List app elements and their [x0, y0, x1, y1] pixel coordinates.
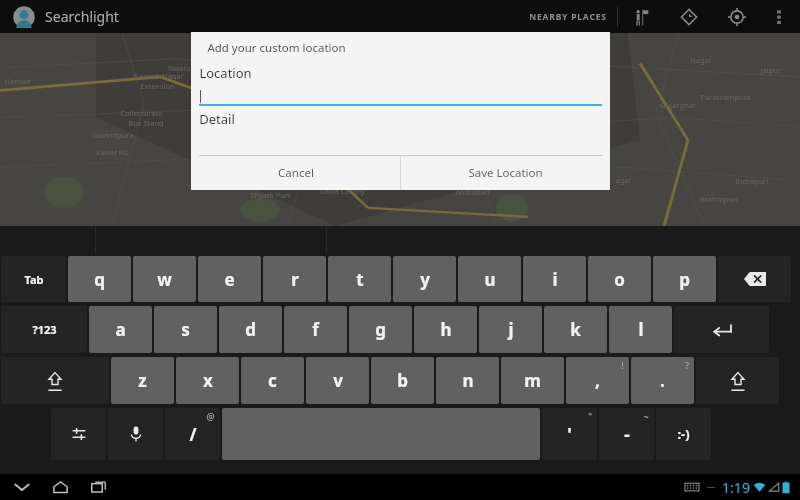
button[interactable]: Home [48, 475, 72, 499]
button[interactable]: t [328, 256, 391, 302]
staticText: Collectorate [120, 108, 163, 118]
staticText: ? [685, 359, 689, 371]
staticText: Add your custom location [207, 40, 346, 56]
button[interactable]: Save Location [401, 156, 610, 190]
staticText: o [614, 268, 625, 291]
staticText: g [375, 318, 386, 341]
button[interactable]: b [371, 357, 434, 404]
button[interactable]: l [609, 306, 672, 353]
button[interactable]: o [588, 256, 651, 302]
staticText: t [356, 268, 364, 291]
staticText: / [189, 423, 197, 446]
staticText: . [660, 369, 665, 392]
button[interactable]: enter [674, 306, 769, 353]
button[interactable]: g [349, 306, 412, 353]
staticText: - [624, 423, 630, 446]
staticText: j [508, 318, 514, 341]
button[interactable]: - [599, 408, 654, 460]
button[interactable]: ?123 [1, 306, 87, 353]
button[interactable]: x [176, 357, 239, 404]
button[interactable]: More options [766, 4, 792, 30]
button[interactable]: y [393, 256, 456, 302]
button[interactable]: shift [1, 357, 109, 404]
button[interactable]: Recent apps [86, 475, 110, 499]
button[interactable]: p [653, 256, 716, 302]
button[interactable]: c [241, 357, 304, 404]
button[interactable]: n [436, 357, 499, 404]
button[interactable]: Change keyboard [683, 478, 701, 496]
staticText: x [203, 369, 213, 392]
staticText: e [224, 268, 235, 291]
staticText: n [462, 369, 474, 392]
staticText: h [440, 318, 452, 341]
staticText: ! [621, 359, 624, 371]
staticText: Govindpura [92, 130, 134, 140]
staticText: Shyam Puri [250, 190, 290, 200]
staticText: Bus Stand [128, 118, 164, 128]
button[interactable]: mic [108, 408, 163, 460]
button[interactable]: d [219, 306, 282, 353]
button[interactable]: v [306, 357, 369, 404]
button[interactable]: k [544, 306, 607, 353]
staticText: p [679, 268, 690, 291]
staticText: Searchlight [45, 7, 119, 26]
button[interactable]: r [263, 256, 326, 302]
button[interactable]: h [414, 306, 477, 353]
button[interactable]: settings [51, 408, 106, 460]
staticText: Ganesh Nagar [133, 71, 184, 81]
staticText: d [245, 318, 256, 341]
button[interactable]: e [198, 256, 261, 302]
staticText: r [291, 268, 299, 291]
button[interactable]: w [133, 256, 196, 302]
button[interactable]: j [479, 306, 542, 353]
button[interactable]: del [718, 256, 791, 302]
button[interactable]: . [631, 357, 694, 404]
button[interactable]: Location [6, 6, 132, 28]
button[interactable]: Back [10, 475, 34, 499]
button[interactable]: Nearby places [626, 2, 656, 32]
staticText: Niwaru Rd [168, 64, 200, 73]
staticText: Tab [24, 272, 44, 287]
button[interactable]: shift [696, 357, 779, 404]
button[interactable]: Cancel [191, 156, 400, 190]
staticText: f [312, 318, 319, 341]
staticText: s [181, 318, 190, 341]
button[interactable]: q [68, 256, 131, 302]
staticText: Nagar [690, 55, 712, 65]
staticText: q [94, 268, 105, 291]
staticText: Kalwar Rd. [96, 148, 129, 157]
staticText: Extension [140, 81, 175, 91]
staticText: c [268, 369, 277, 392]
button[interactable]: f [284, 306, 347, 353]
button[interactable]: ' [542, 408, 597, 460]
button[interactable]: m [501, 357, 564, 404]
button[interactable]: / [165, 408, 220, 460]
staticText: Cancel [278, 165, 314, 181]
staticText: " [588, 410, 592, 422]
staticText: ' [567, 423, 572, 446]
staticText: Location [199, 64, 252, 82]
staticText: Parasrampura [700, 92, 751, 102]
staticText: Indrapuri [735, 176, 769, 186]
staticText: u [484, 268, 496, 291]
button[interactable]: z [111, 357, 174, 404]
button[interactable]: u [458, 256, 521, 302]
button[interactable]: :-) [656, 408, 711, 460]
button[interactable]: i [523, 256, 586, 302]
staticText: ?123 [32, 322, 57, 337]
button[interactable]: My location [722, 2, 752, 32]
staticText: @ [206, 410, 215, 422]
staticText: Jaipur [760, 65, 781, 75]
button[interactable] [199, 88, 602, 106]
button[interactable]: Navigate [674, 2, 704, 32]
staticText: w [157, 268, 172, 291]
button[interactable]: NEARBY PLACES [525, 11, 611, 23]
button[interactable]: s [154, 306, 217, 353]
button[interactable]: , [566, 357, 629, 404]
button[interactable]: Tab [1, 256, 66, 302]
staticText: Brahmpuri [700, 194, 738, 204]
button[interactable]: a [89, 306, 152, 353]
staticText: b [397, 369, 408, 392]
